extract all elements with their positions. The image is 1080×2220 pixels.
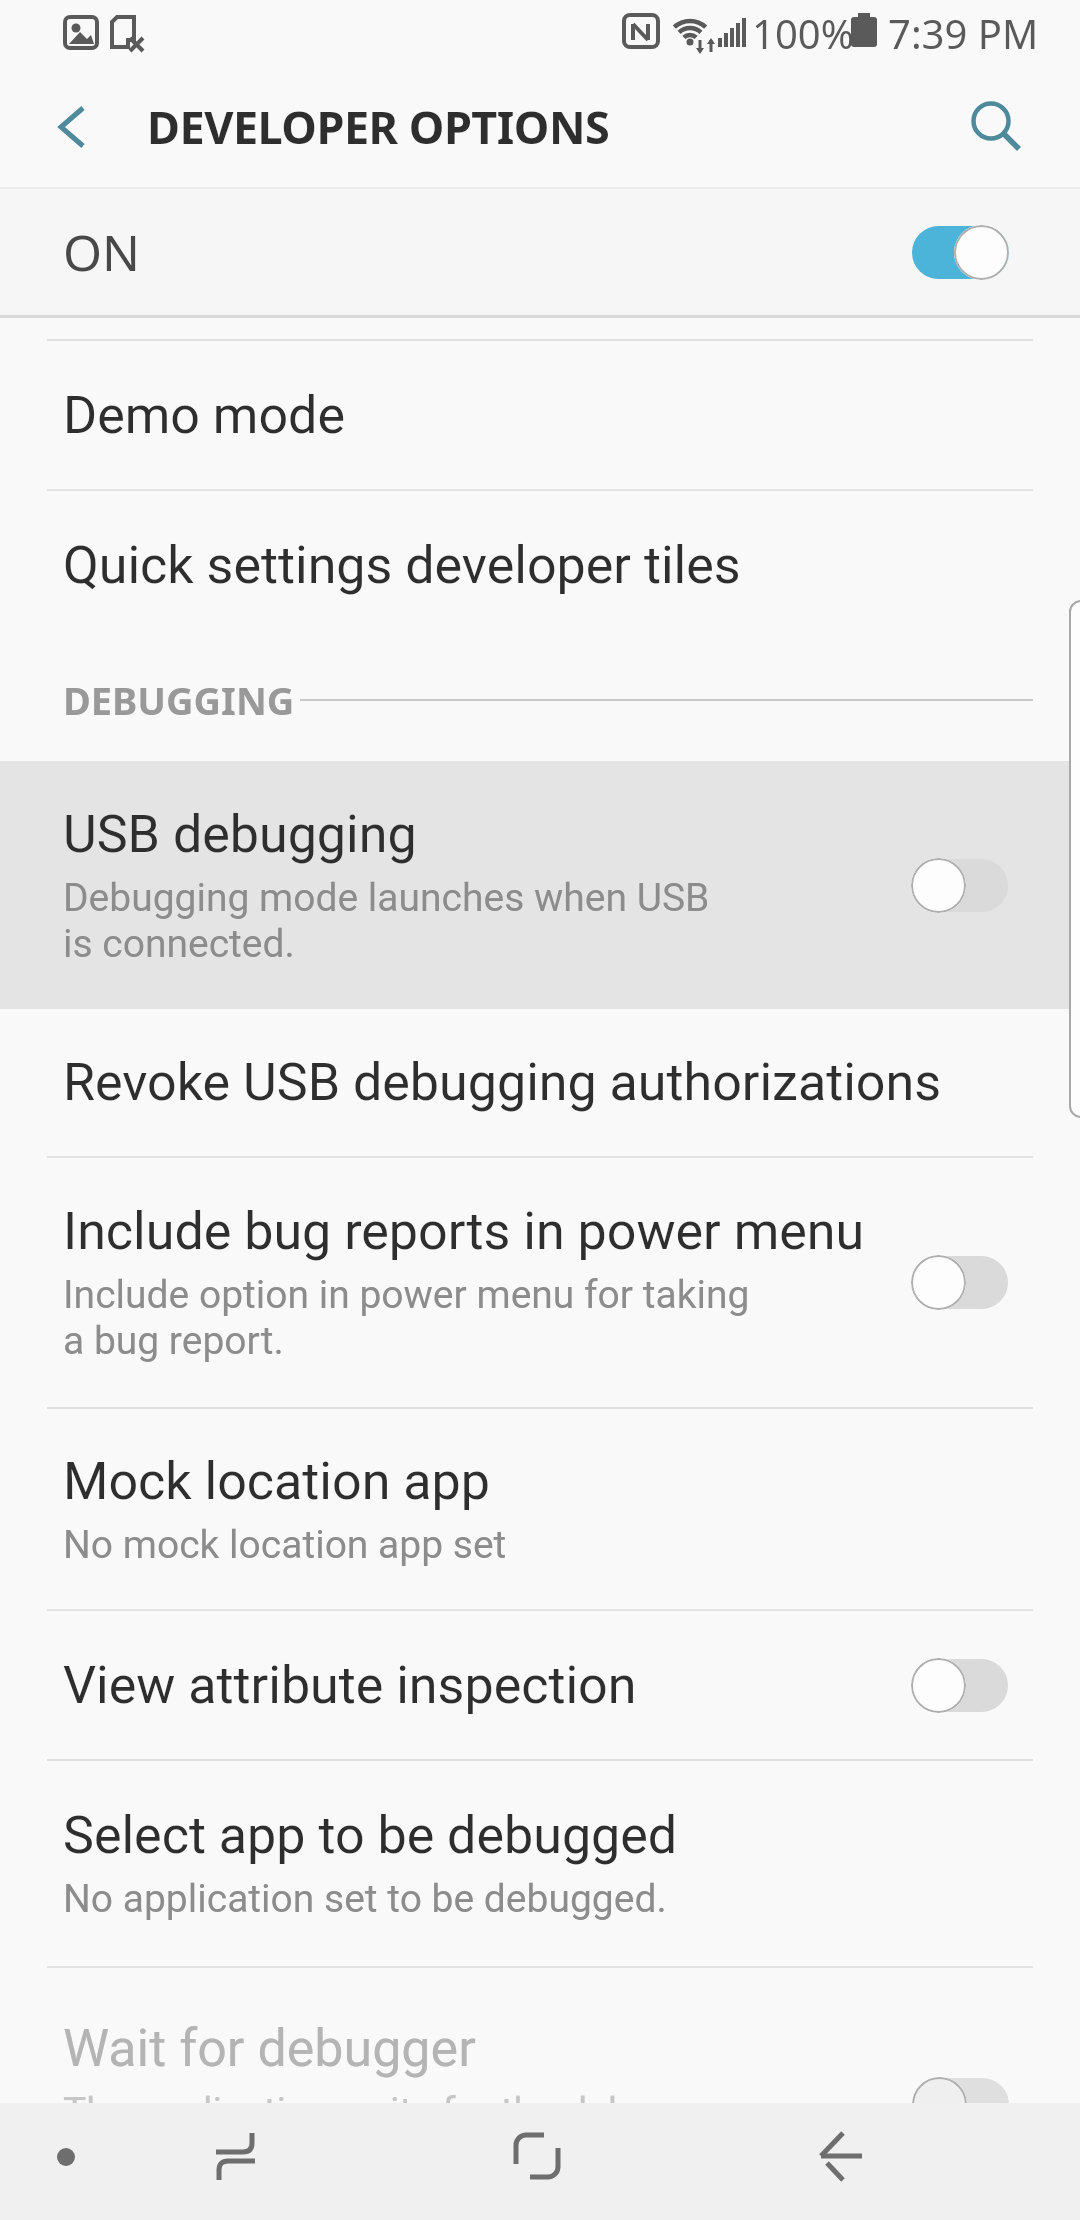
staticText: Debugging mode launches when USB: [63, 875, 710, 921]
staticText: Demo mode: [63, 385, 346, 446]
staticText: Include option in power menu for taking: [63, 1272, 750, 1318]
staticText: Include bug reports in power menu: [63, 1201, 865, 1262]
button[interactable]: [960, 65, 1080, 187]
staticText: USB debugging: [63, 804, 417, 865]
button[interactable]: Include bug reports in power menu: [0, 1158, 1080, 1407]
button[interactable]: View attribute inspection: [0, 1611, 1080, 1759]
button[interactable]: [360, 2103, 720, 2220]
staticText: a bug report.: [63, 1318, 284, 1364]
staticText: DEBUGGING: [63, 674, 295, 726]
button[interactable]: Wait for debugger: [0, 1968, 1080, 2103]
button[interactable]: [720, 2103, 1080, 2220]
staticText: DEVELOPER OPTIONS: [147, 96, 610, 157]
staticText: Quick settings developer tiles: [63, 535, 741, 596]
button[interactable]: ON: [0, 189, 1080, 315]
staticText: is connected.: [63, 921, 295, 967]
staticText: Mock location app: [63, 1451, 490, 1512]
button[interactable]: Select app to be debugged: [0, 1761, 1080, 1966]
staticText: View attribute inspection: [63, 1655, 637, 1716]
staticText: The application waits for the debugger: [63, 2089, 730, 2103]
staticText: Select app to be debugged: [63, 1805, 678, 1866]
staticText: 7:39 PM: [888, 6, 1039, 60]
button[interactable]: Quick settings developer tiles: [0, 491, 1080, 639]
staticText: No mock location app set: [63, 1522, 507, 1568]
staticText: No application set to be debugged.: [63, 1876, 667, 1922]
staticText: 100%: [752, 6, 854, 60]
staticText: ON: [63, 218, 141, 286]
button[interactable]: USB debugging: [0, 761, 1080, 1009]
staticText: Wait for debugger: [63, 2018, 476, 2079]
button[interactable]: Mock location app: [0, 1409, 1080, 1609]
staticText: Revoke USB debugging authorizations: [63, 1052, 942, 1113]
button[interactable]: Demo mode: [0, 341, 1080, 489]
button[interactable]: Revoke USB debugging authorizations: [0, 1009, 1080, 1156]
button[interactable]: [0, 2103, 360, 2220]
button[interactable]: [0, 65, 120, 187]
